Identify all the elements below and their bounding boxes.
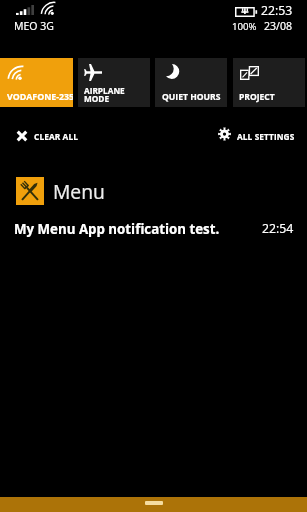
staticText: My Menu App notification test. — [14, 220, 220, 238]
button[interactable]: AIRPLANE — [78, 58, 150, 107]
staticText: 100% — [232, 20, 257, 33]
staticText: VODAFONE-2352 — [7, 91, 73, 103]
staticText: 22:54 — [262, 220, 294, 237]
staticText: 23/08 — [264, 19, 293, 33]
button[interactable]: Menu — [0, 170, 307, 242]
staticText: 22:53 — [261, 2, 293, 19]
button[interactable]: VODAFONE-2352 — [0, 58, 73, 107]
staticText: AIRPLANE — [84, 85, 125, 96]
button[interactable]: PROJECT — [233, 58, 305, 107]
staticText: MEO 3G — [14, 19, 54, 33]
button[interactable]: QUIET HOURS — [155, 58, 227, 107]
staticText: QUIET HOURS — [162, 91, 221, 103]
button[interactable]: Home — [0, 497, 307, 512]
staticText: MODE — [84, 93, 110, 104]
staticText: CLEAR ALL — [34, 131, 78, 142]
staticText: Menu — [53, 178, 105, 204]
staticText: ALL SETTINGS — [237, 131, 295, 142]
button[interactable]: CLEAR ALL — [8, 122, 84, 148]
staticText: PROJECT — [239, 91, 275, 103]
button[interactable]: ALL SETTINGS — [214, 122, 296, 148]
